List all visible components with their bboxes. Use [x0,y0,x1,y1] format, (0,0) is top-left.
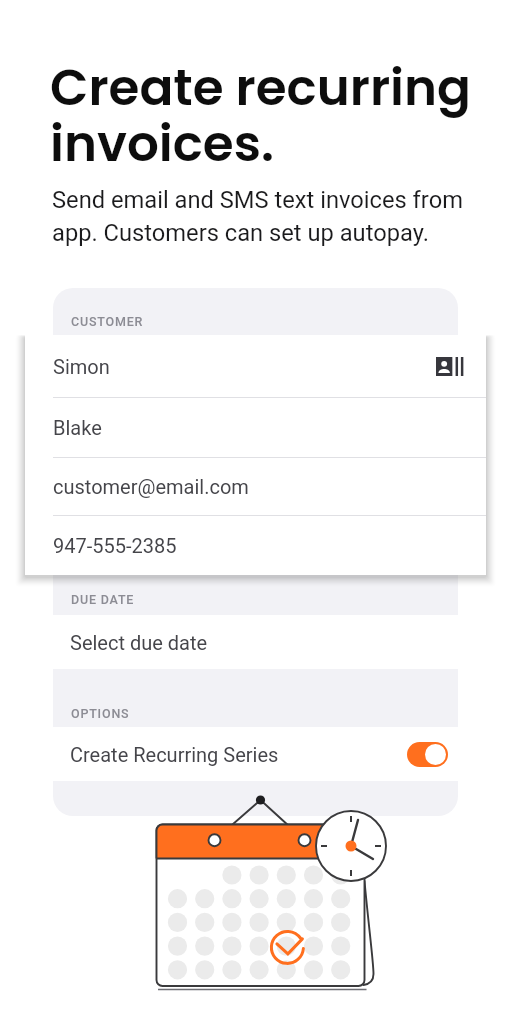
button[interactable]: customer@email.com [25,458,486,515]
staticText: Simon [53,355,110,378]
button[interactable]: Toggle recurring series [407,742,448,767]
staticText: Select due date [70,631,208,654]
staticText: 947-555-2385 [53,534,177,557]
staticText: DUE DATE [71,592,135,607]
staticText: Blake [53,416,102,439]
staticText: OPTIONS [71,706,130,721]
button[interactable]: 947-555-2385 [25,516,486,575]
staticText: customer@email.com [53,475,249,498]
staticText: Send email and SMS text invoices from ap… [52,186,482,247]
button[interactable]: Select due date [53,615,458,669]
button[interactable]: Simon [25,335,486,397]
button[interactable]: Choose contact [435,351,465,381]
button[interactable]: Blake [25,398,486,457]
staticText: Create recurring invoices. [50,53,471,179]
staticText: Create Recurring Series [70,743,279,766]
button[interactable]: Create Recurring Series [53,727,458,781]
staticText: CUSTOMER [71,314,144,329]
